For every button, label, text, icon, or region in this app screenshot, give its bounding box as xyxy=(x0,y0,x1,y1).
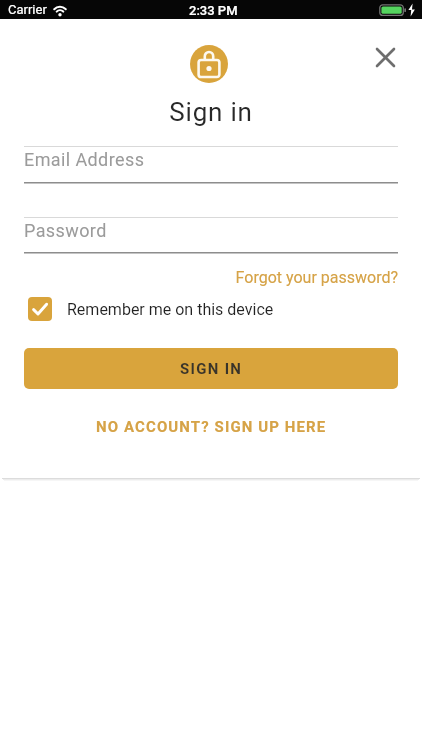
button[interactable]: Forgot your password? xyxy=(224,268,398,292)
staticText: Password xyxy=(24,220,107,241)
staticText: SIGN IN xyxy=(180,360,243,378)
button[interactable]: Email Address xyxy=(24,146,398,183)
staticText: Remember me on this device xyxy=(67,300,274,319)
staticText: Sign in xyxy=(0,97,422,127)
staticText: NO ACCOUNT? SIGN UP HERE xyxy=(96,418,327,436)
staticText: Carrier xyxy=(8,2,47,17)
staticText: Forgot your password? xyxy=(224,268,398,287)
button[interactable] xyxy=(364,36,406,78)
button[interactable]: Remember me on this device xyxy=(28,296,308,322)
button[interactable]: NO ACCOUNT? SIGN UP HERE xyxy=(60,414,362,440)
button[interactable]: SIGN IN xyxy=(24,348,398,389)
staticText: Email Address xyxy=(24,149,145,170)
staticText: 2:33 PM xyxy=(189,3,238,18)
button[interactable]: Password xyxy=(24,217,398,254)
